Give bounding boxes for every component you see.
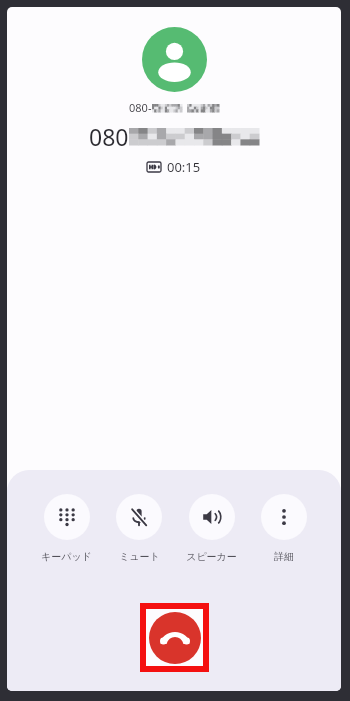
button[interactable]: More options (261, 494, 307, 563)
button[interactable]: Mute (116, 494, 162, 563)
button[interactable]: Keypad (41, 494, 92, 563)
staticText: 詳細 (274, 550, 294, 563)
button[interactable]: Speaker (186, 494, 237, 563)
staticText: キーパッド (41, 550, 92, 563)
staticText: 080 (89, 121, 129, 152)
staticText: ミュート (119, 550, 160, 563)
staticText: スピーカー (186, 550, 237, 563)
staticText: 080- (129, 100, 152, 115)
button[interactable]: End call (149, 612, 201, 664)
staticText: 00:15 (167, 158, 201, 176)
